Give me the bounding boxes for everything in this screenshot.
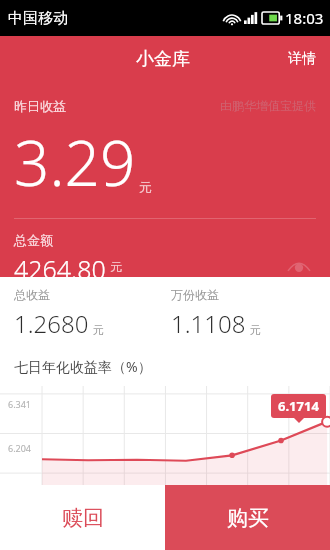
staticText: 4264.80 xyxy=(14,252,106,277)
staticText: 七日年化收益率（%） xyxy=(14,357,152,376)
button[interactable]: 详情 xyxy=(274,40,330,78)
staticText: 6.204 xyxy=(8,442,32,454)
staticText: 总金额 xyxy=(14,232,53,248)
button[interactable]: 购买 xyxy=(165,485,330,550)
staticText: 小金库 xyxy=(136,48,190,71)
staticText: 购买 xyxy=(227,505,269,531)
staticText: 元 xyxy=(139,179,152,195)
staticText: 昨日收益 xyxy=(14,98,66,114)
staticText: 万份收益 xyxy=(171,287,219,302)
button[interactable]: Toggle amount visibility xyxy=(284,255,314,277)
staticText: 6.1714 xyxy=(278,397,319,415)
staticText: 18:03 xyxy=(285,8,324,28)
button[interactable]: 赎回 xyxy=(0,485,165,550)
staticText: 1.1108 xyxy=(171,307,246,340)
staticText: 3.29 xyxy=(14,120,136,204)
staticText: 元 xyxy=(250,323,261,337)
staticText: 赎回 xyxy=(62,505,104,531)
staticText: 由鹏华增值宝提供 xyxy=(220,98,316,113)
staticText: 详情 xyxy=(288,50,316,68)
staticText: 1.2680 xyxy=(14,307,89,340)
staticText: 总收益 xyxy=(14,287,50,302)
staticText: 元 xyxy=(110,259,122,274)
staticText: 元 xyxy=(93,323,104,337)
staticText: 中国移动 xyxy=(8,9,68,28)
staticText: 6.341 xyxy=(8,398,32,410)
